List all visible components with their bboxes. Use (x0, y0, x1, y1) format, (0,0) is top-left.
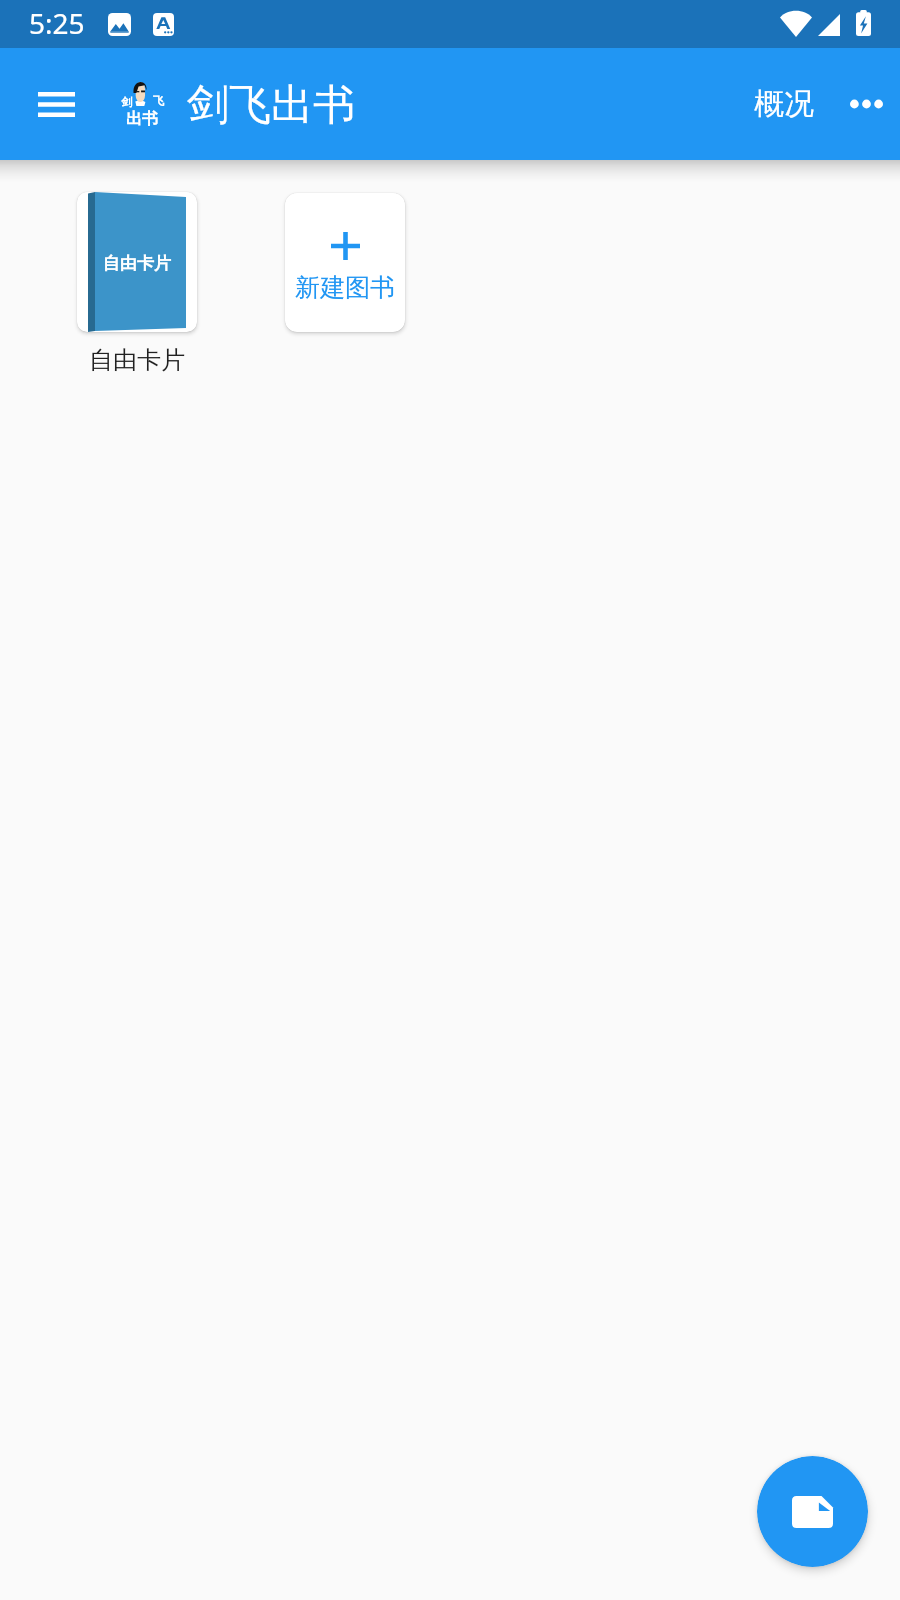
button[interactable]: 新建图书 (285, 193, 405, 332)
button[interactable]: More options (833, 62, 899, 146)
staticText: 剑飞出书 (187, 79, 355, 132)
staticText: 概况 (754, 85, 814, 123)
button[interactable]: 概况 (742, 48, 826, 160)
staticText: 5:25 (29, 4, 85, 42)
staticText: 飞 (153, 94, 164, 108)
staticText: 剑 (121, 95, 132, 109)
button[interactable]: Menu (14, 62, 98, 146)
staticText: 自由卡片 (103, 253, 171, 274)
button[interactable]: New note (757, 1456, 868, 1567)
button[interactable]: 自由卡片 (77, 192, 197, 332)
staticText: 新建图书 (295, 272, 395, 303)
staticText: 出书 (126, 109, 158, 129)
staticText: 自由卡片 (89, 345, 185, 375)
